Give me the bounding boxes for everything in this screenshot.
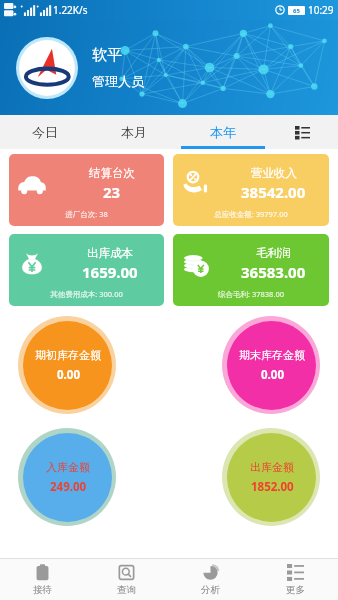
staticText: 本年 [210, 124, 236, 140]
button[interactable]: 出库金额 [222, 428, 320, 526]
staticText: 期初库存金额 [35, 348, 101, 362]
staticText: 管理人员 [92, 73, 144, 89]
button[interactable]: 期末库存金额 [222, 316, 320, 414]
staticText: 营业收入 [251, 166, 297, 180]
staticText: 期末库存金额 [239, 348, 305, 362]
button[interactable]: 营业收入 [173, 154, 329, 226]
staticText: 查询 [117, 584, 136, 596]
button[interactable]: 本月 [89, 115, 178, 149]
staticText: 分析 [201, 584, 220, 596]
button[interactable]: 查询 [84, 559, 168, 600]
button[interactable]: 分析 [168, 559, 253, 600]
button[interactable]: 本年 [178, 115, 267, 149]
staticText: 总应收金额: 39797.00 [214, 209, 288, 219]
button[interactable]: 列表 [267, 115, 338, 149]
staticText: 249.00 [50, 479, 87, 495]
button[interactable]: 结算台次 [9, 154, 164, 226]
staticText: 接待 [33, 584, 52, 596]
staticText: 结算台次 [89, 166, 135, 180]
staticText: 进厂台次: 38 [65, 209, 108, 219]
staticText: 1659.00 [82, 262, 138, 282]
button[interactable]: 入库金额 [18, 428, 116, 526]
staticText: 65 [293, 7, 300, 15]
staticText: 更多 [286, 584, 305, 596]
staticText: 10:29 [308, 3, 334, 17]
staticText: 出库成本 [87, 246, 133, 260]
button[interactable]: 毛利润 [173, 234, 329, 306]
staticText: 38542.00 [241, 182, 306, 202]
staticText: 综合毛利: 37838.00 [218, 289, 284, 299]
button[interactable]: 更多 [253, 559, 338, 600]
staticText: 软平 [92, 46, 122, 65]
staticText: 1852.00 [251, 479, 294, 495]
button[interactable]: 接待 [0, 559, 84, 600]
button[interactable]: 今日 [0, 115, 89, 149]
staticText: 0.00 [57, 367, 80, 383]
staticText: 其他费用成本: 300.00 [50, 289, 123, 299]
staticText: 毛利润 [256, 246, 291, 260]
staticText: 23 [103, 182, 121, 202]
staticText: 入库金额 [46, 460, 90, 474]
staticText: 1.22K/s [53, 3, 88, 17]
staticText: 今日 [32, 124, 58, 140]
button[interactable]: 出库成本 [9, 234, 164, 306]
button[interactable]: 期初库存金额 [18, 316, 116, 414]
staticText: 出库金额 [250, 460, 294, 474]
staticText: 本月 [121, 124, 147, 140]
staticText: 0.00 [261, 367, 284, 383]
staticText: 36583.00 [241, 262, 306, 282]
